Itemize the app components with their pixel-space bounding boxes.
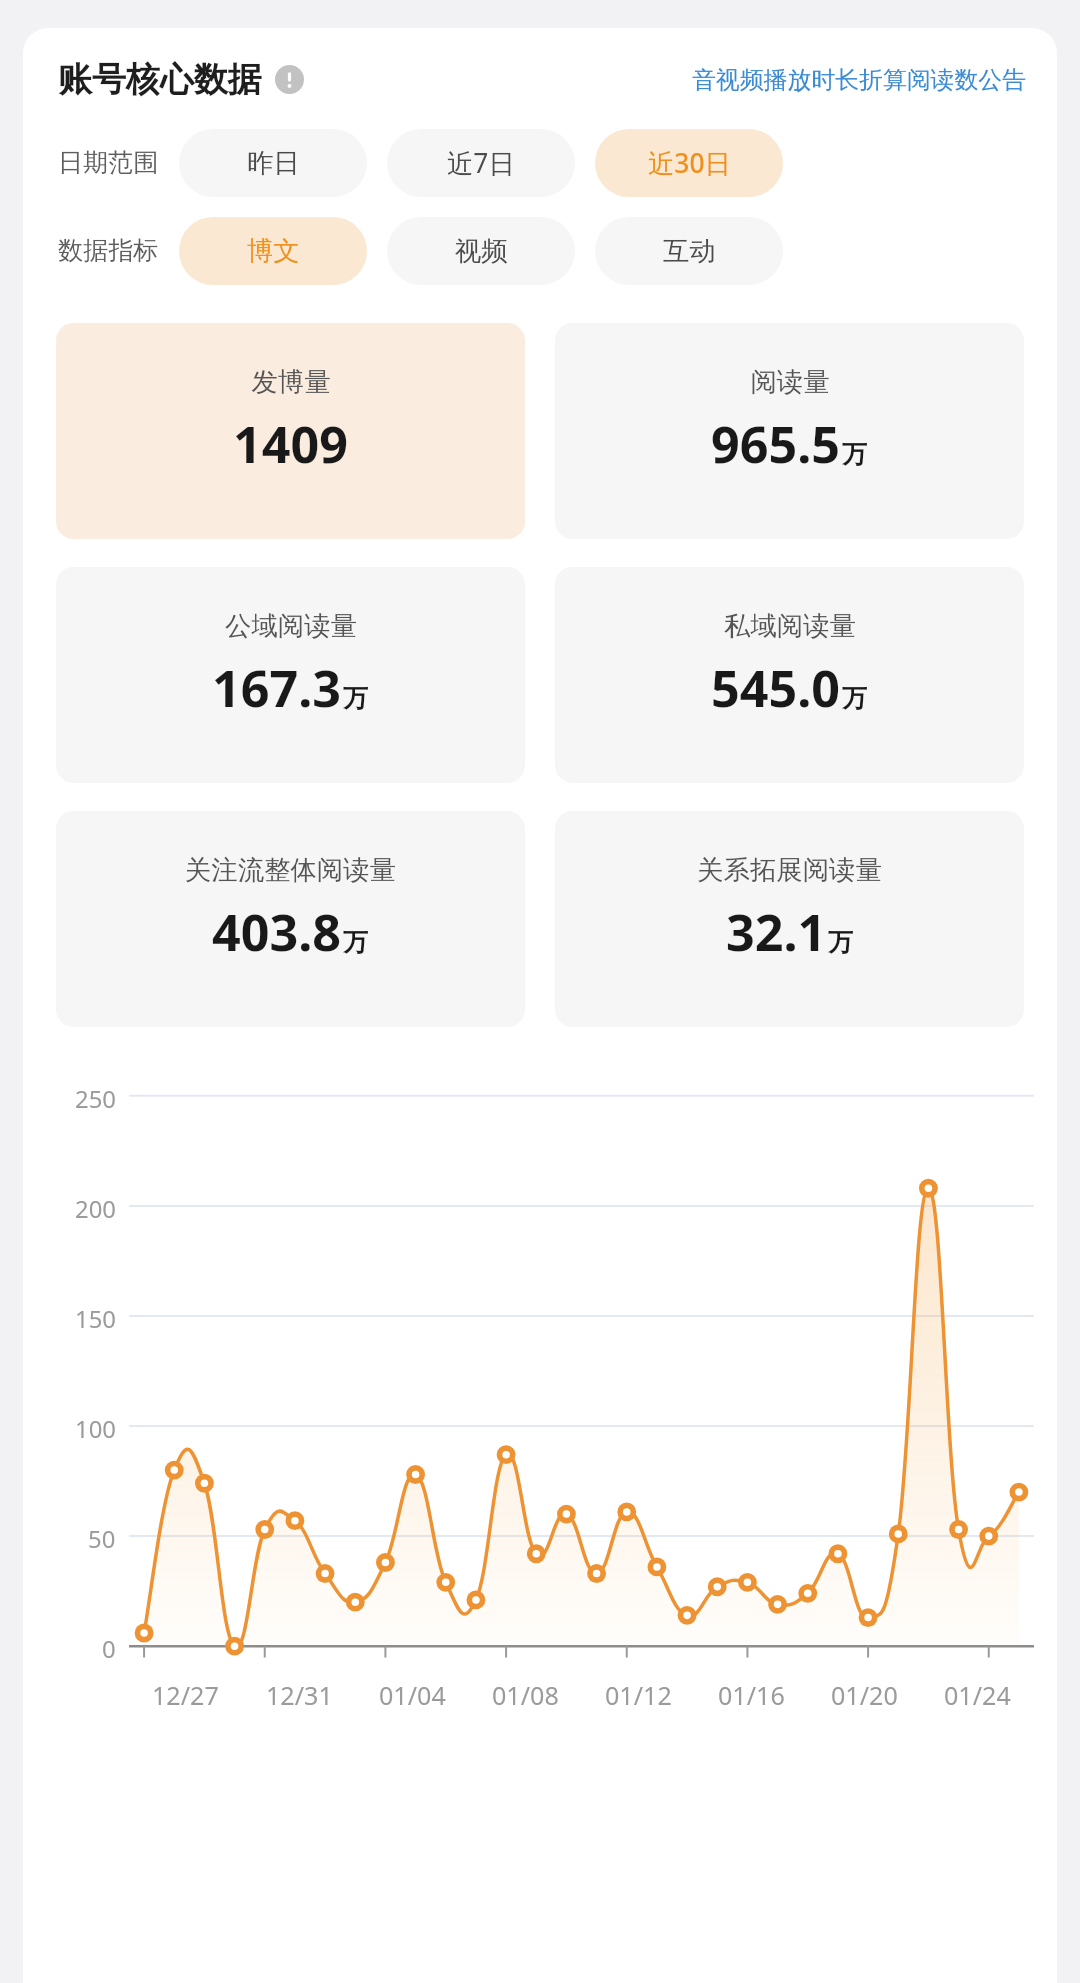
staticText: 万 xyxy=(842,439,868,471)
button[interactable]: 音视频播放时长折算阅读数公告 xyxy=(692,65,1027,95)
staticText: 01/12 xyxy=(605,1678,672,1712)
staticText: 万 xyxy=(343,927,369,959)
staticText: 博文 xyxy=(247,235,300,268)
staticText: 音视频播放时长折算阅读数公告 xyxy=(692,65,1027,95)
staticText: 12/27 xyxy=(152,1678,219,1712)
staticText: 数据指标 xyxy=(58,235,159,267)
button[interactable]: 私域阅读量 xyxy=(555,567,1024,783)
staticText: 965.5 xyxy=(711,409,841,477)
staticText: 昨日 xyxy=(247,147,300,180)
staticText: 250 xyxy=(75,1082,116,1110)
button[interactable]: 公域阅读量 xyxy=(56,567,525,783)
staticText: 01/24 xyxy=(944,1678,1011,1712)
button[interactable]: 发博量 xyxy=(56,323,525,539)
staticText: 200 xyxy=(75,1192,116,1220)
staticText: 近7日 xyxy=(447,145,515,181)
staticText: 私域阅读量 xyxy=(724,610,856,643)
staticText: 万 xyxy=(842,683,868,715)
staticText: 1409 xyxy=(233,409,348,477)
staticText: 万 xyxy=(343,683,369,715)
staticText: 账号核心数据 xyxy=(58,58,262,101)
staticText: 545.0 xyxy=(711,653,841,721)
staticText: 50 xyxy=(88,1522,116,1550)
button[interactable]: 阅读量 xyxy=(555,323,1024,539)
button[interactable]: 博文 xyxy=(179,217,367,285)
staticText: 01/16 xyxy=(718,1678,785,1712)
staticText: 万 xyxy=(828,927,854,959)
button[interactable]: 近7日 xyxy=(387,129,575,197)
staticText: 403.8 xyxy=(212,897,342,965)
staticText: 01/08 xyxy=(492,1678,559,1712)
staticText: 167.3 xyxy=(212,653,342,721)
staticText: 发博量 xyxy=(251,366,331,399)
staticText: 公域阅读量 xyxy=(225,610,357,643)
staticText: 阅读量 xyxy=(750,366,830,399)
staticText: 关系拓展阅读量 xyxy=(697,854,882,887)
staticText: 关注流整体阅读量 xyxy=(185,854,396,887)
staticText: 32.1 xyxy=(726,897,827,965)
staticText: 互动 xyxy=(663,235,716,268)
button[interactable]: 关注流整体阅读量 xyxy=(56,811,525,1027)
button[interactable]: 视频 xyxy=(387,217,575,285)
staticText: 日期范围 xyxy=(58,147,159,179)
staticText: 近30日 xyxy=(648,145,731,181)
staticText: 0 xyxy=(102,1632,116,1660)
button[interactable]: 昨日 xyxy=(179,129,367,197)
staticText: 视频 xyxy=(455,235,508,268)
staticText: 12/31 xyxy=(266,1678,333,1712)
button[interactable]: 近30日 xyxy=(595,129,783,197)
button[interactable]: 互动 xyxy=(595,217,783,285)
staticText: 01/04 xyxy=(379,1678,446,1712)
button[interactable]: 关系拓展阅读量 xyxy=(555,811,1024,1027)
staticText: 01/20 xyxy=(831,1678,898,1712)
button[interactable]: 数据说明 xyxy=(275,65,304,94)
staticText: 100 xyxy=(75,1412,116,1440)
staticText: 150 xyxy=(75,1302,116,1330)
